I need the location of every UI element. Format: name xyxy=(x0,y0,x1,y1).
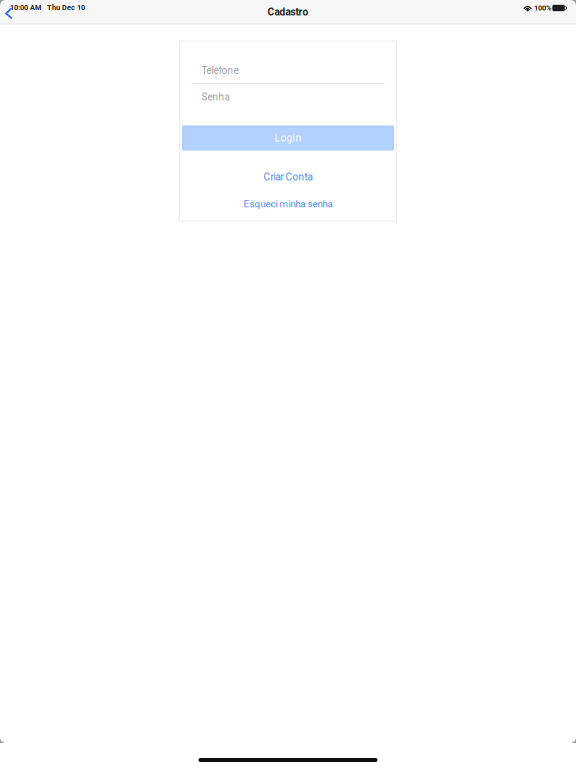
button[interactable]: Login xyxy=(182,126,393,150)
staticText: Login xyxy=(274,132,301,144)
button[interactable]: Criar Conta xyxy=(179,164,396,190)
button[interactable]: Senha xyxy=(191,84,384,110)
staticText: Cadastro xyxy=(267,6,308,18)
staticText: 10:00 AM xyxy=(10,3,41,12)
staticText: Telefone xyxy=(201,65,238,76)
staticText: Criar Conta xyxy=(263,171,312,183)
staticText: Senha xyxy=(201,91,229,103)
button[interactable]: Esqueci minha senha xyxy=(179,190,396,218)
staticText: 100% xyxy=(534,4,551,12)
staticText: Esqueci minha senha xyxy=(243,198,332,210)
staticText: Thu Dec 10 xyxy=(47,3,85,12)
button[interactable]: Telefone xyxy=(191,58,384,83)
button[interactable]: Back xyxy=(0,0,30,24)
